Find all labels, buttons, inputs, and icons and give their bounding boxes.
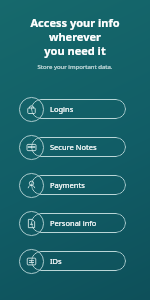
staticText: Logins bbox=[50, 104, 74, 114]
button[interactable]: Payments bbox=[0, 172, 150, 198]
staticText: Secure Notes bbox=[50, 142, 97, 152]
button[interactable]: Logins bbox=[0, 96, 150, 122]
staticText: IDs bbox=[50, 256, 62, 266]
button[interactable]: IDs bbox=[0, 248, 150, 274]
staticText: Payments bbox=[50, 180, 85, 190]
staticText: Personal info bbox=[50, 218, 97, 228]
staticText: Store your important data. bbox=[0, 63, 150, 71]
button[interactable]: Personal info bbox=[0, 210, 150, 236]
button[interactable]: Secure Notes bbox=[0, 134, 150, 160]
staticText: Access your info wherever you need it bbox=[4, 15, 146, 58]
